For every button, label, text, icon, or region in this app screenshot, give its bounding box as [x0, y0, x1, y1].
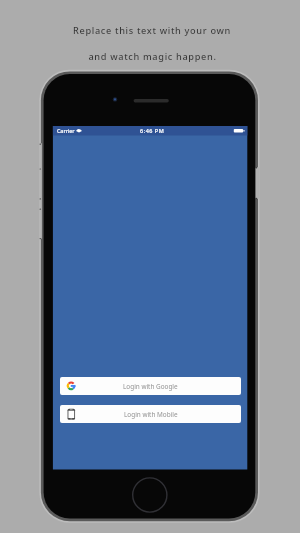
- staticText: Carrier: [57, 127, 75, 134]
- staticText: and watch magic happen.: [88, 50, 217, 63]
- staticText: 6:46 PM: [140, 127, 165, 134]
- staticText: Login with Google: [123, 382, 178, 391]
- button[interactable]: Login with Google: [60, 377, 241, 395]
- staticText: Replace this text with your own: [73, 24, 231, 37]
- staticText: Login with Mobile: [124, 410, 178, 419]
- button[interactable]: Login with Mobile: [60, 405, 241, 423]
